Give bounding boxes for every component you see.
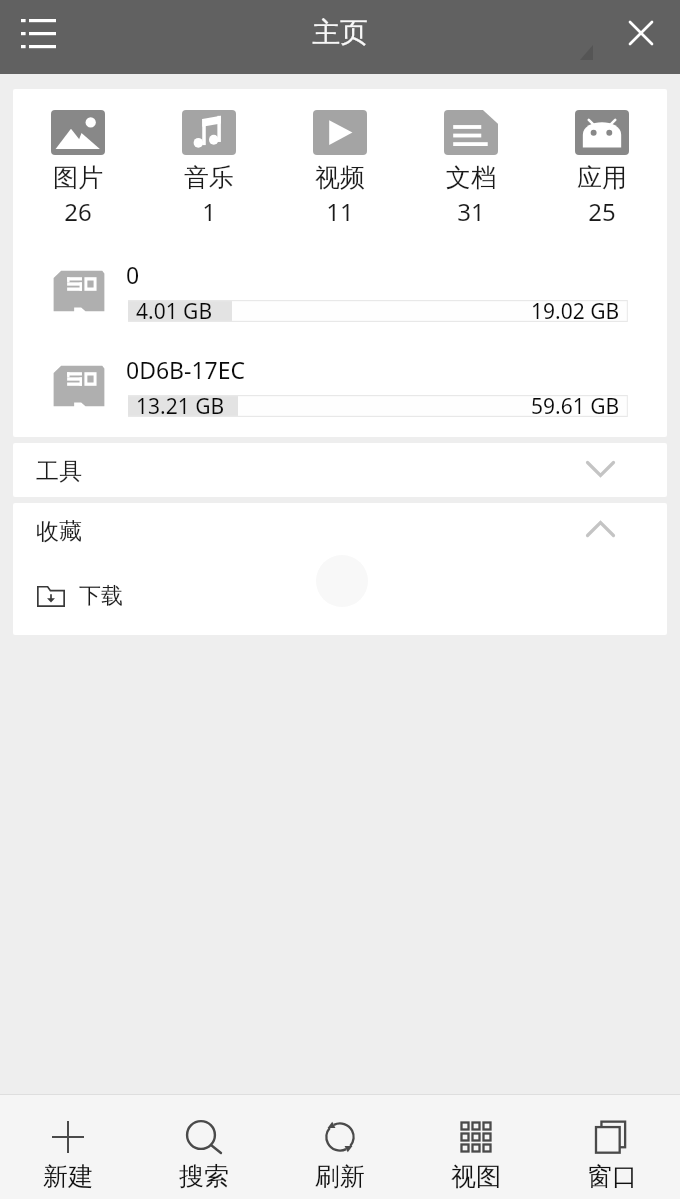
button[interactable]: 工具	[13, 443, 667, 497]
staticText: 19.02 GB	[531, 297, 620, 326]
staticText: 0D6B-17EC	[126, 354, 246, 385]
staticText: 音乐	[163, 162, 255, 193]
button[interactable]: Close	[612, 4, 670, 62]
button[interactable]: 音乐	[163, 101, 255, 226]
staticText: 11	[294, 195, 386, 228]
button[interactable]: 搜索	[136, 1094, 272, 1199]
button[interactable]: 0D6B-17EC	[13, 360, 667, 432]
button[interactable]: 下载	[13, 573, 667, 619]
staticText: 视频	[294, 162, 386, 193]
staticText: 1	[163, 195, 255, 228]
staticText: 4.01 GB	[136, 297, 213, 326]
staticText: 工具	[36, 457, 82, 486]
staticText: 图片	[32, 162, 124, 193]
button[interactable]: 0	[13, 265, 667, 337]
staticText: 视图	[408, 1161, 544, 1192]
button[interactable]: 视频	[294, 101, 386, 226]
staticText: 新建	[0, 1161, 136, 1192]
staticText: 文档	[425, 162, 517, 193]
staticText: 0	[126, 259, 140, 290]
staticText: 主页	[312, 15, 368, 50]
staticText: 13.21 GB	[136, 392, 225, 421]
staticText: 26	[32, 195, 124, 228]
staticText: 25	[556, 195, 648, 228]
staticText: 窗口	[544, 1161, 680, 1192]
button[interactable]: 应用	[556, 101, 648, 226]
button[interactable]: 文档	[425, 101, 517, 226]
staticText: 下载	[79, 582, 123, 610]
button[interactable]: 刷新	[272, 1094, 408, 1199]
button[interactable]: 窗口	[544, 1094, 680, 1199]
staticText: 刷新	[272, 1161, 408, 1192]
staticText: 应用	[556, 162, 648, 193]
staticText: 59.61 GB	[531, 392, 620, 421]
staticText: 31	[425, 195, 517, 228]
button[interactable]: 视图	[408, 1094, 544, 1199]
button[interactable]: Menu	[7, 2, 69, 64]
staticText: 搜索	[136, 1161, 272, 1192]
staticText: 收藏	[36, 517, 82, 546]
button[interactable]: 新建	[0, 1094, 136, 1199]
button[interactable]: 图片	[32, 101, 124, 226]
button[interactable]: 收藏	[13, 503, 667, 561]
